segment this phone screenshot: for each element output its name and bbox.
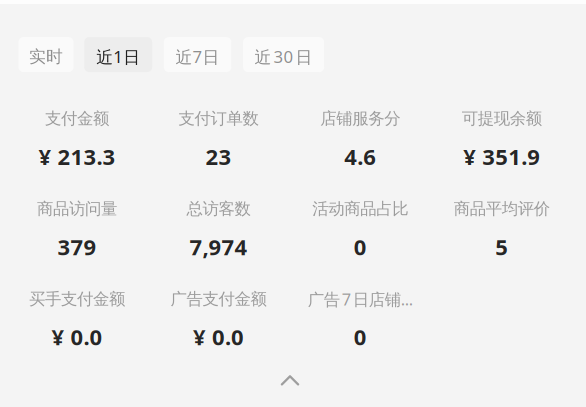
staticText: 可提现余额 [462, 108, 542, 129]
staticText: 23 [206, 141, 232, 171]
staticText: ¥ 0.0 [193, 322, 244, 352]
staticText: 0 [354, 232, 367, 262]
staticText: 4.6 [344, 141, 376, 171]
staticText: ¥ 213.3 [38, 141, 115, 171]
staticText: 0 [354, 322, 367, 352]
staticText: 活动商品占比 [312, 198, 408, 219]
staticText: 广告支付金额 [171, 289, 267, 309]
button[interactable]: 近 30 日 [243, 37, 324, 72]
staticText: ¥ 0.0 [51, 322, 102, 352]
button[interactable]: 近1日 [84, 37, 152, 72]
staticText: 近7日 [176, 45, 220, 68]
button[interactable]: 近7日 [164, 37, 231, 72]
staticText: 7,974 [190, 232, 248, 262]
staticText: 买手支付金额 [29, 289, 125, 309]
staticText: 近1日 [96, 45, 140, 68]
staticText: 总访客数 [187, 198, 251, 219]
button[interactable]: 收起 [258, 360, 322, 400]
staticText: 店铺服务分 [320, 108, 400, 129]
staticText: 广告 7 日店铺... [308, 288, 413, 310]
staticText: 近 30 日 [255, 45, 313, 68]
staticText: 实时 [29, 46, 63, 67]
staticText: 379 [57, 232, 96, 262]
staticText: 支付金额 [45, 108, 109, 129]
staticText: 支付订单数 [179, 108, 259, 129]
staticText: 商品平均评价 [454, 198, 550, 219]
staticText: ¥ 351.9 [463, 141, 540, 171]
button[interactable]: 实时 [18, 37, 73, 72]
staticText: 5 [495, 232, 508, 262]
staticText: 商品访问量 [37, 198, 117, 219]
